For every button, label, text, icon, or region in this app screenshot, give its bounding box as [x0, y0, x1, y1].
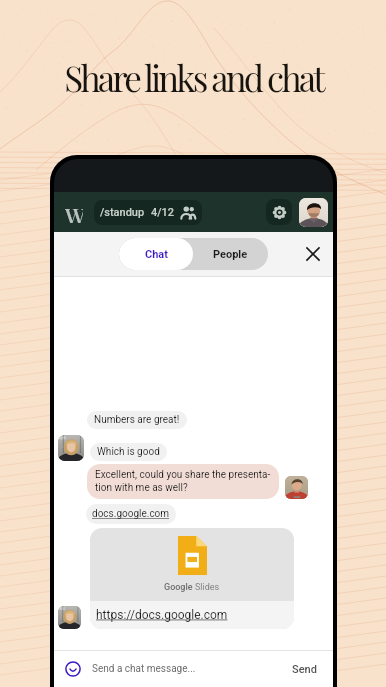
- staticText: /standup: [100, 206, 145, 219]
- button[interactable]: Profile: [299, 198, 328, 227]
- button[interactable]: Close: [298, 239, 328, 269]
- button[interactable]: docs.google.com: [86, 504, 176, 524]
- button[interactable]: Excellent, could you share the presenta-…: [87, 464, 279, 499]
- button[interactable]: Settings: [266, 199, 292, 225]
- staticText: Numbers are great!: [94, 414, 180, 426]
- staticText: Google: [164, 582, 195, 593]
- staticText: W: [65, 201, 83, 223]
- button[interactable]: /standup: [94, 200, 202, 225]
- button[interactable]: Google: [90, 528, 294, 629]
- staticText: docs.google.com: [92, 508, 170, 520]
- button[interactable]: People: [193, 238, 268, 270]
- button[interactable]: Chat: [119, 238, 193, 270]
- staticText: 4/12: [151, 206, 175, 219]
- staticText: Chat: [145, 248, 168, 261]
- staticText: Excellent, could you share the presenta-…: [95, 469, 271, 494]
- button[interactable]: Send: [290, 661, 319, 678]
- staticText: https://docs.google.com: [96, 608, 228, 622]
- button[interactable]: Which is good: [90, 443, 167, 461]
- staticText: Slides: [195, 582, 220, 593]
- staticText: Which is good: [97, 446, 160, 458]
- staticText: Send: [292, 663, 317, 676]
- button[interactable]: Numbers are great!: [87, 411, 187, 429]
- staticText: Send a chat message...: [92, 663, 196, 675]
- button[interactable]: Emoji: [65, 661, 81, 677]
- staticText: Share links and chat: [64, 54, 323, 101]
- staticText: People: [213, 248, 248, 261]
